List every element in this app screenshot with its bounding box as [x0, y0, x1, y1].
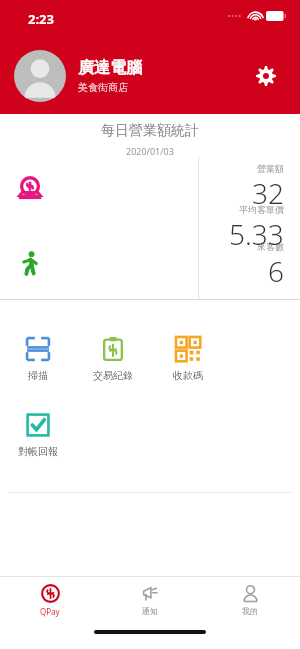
staticText: 收款碼 — [173, 369, 203, 382]
button[interactable]: 對帳回報 — [0, 412, 75, 458]
staticText: 2020/01/03 — [126, 145, 174, 157]
staticText: 營業額 — [257, 163, 284, 174]
staticText: 對帳回報 — [18, 445, 58, 458]
button[interactable]: Settings — [250, 60, 282, 92]
button[interactable]: 我的 — [200, 577, 300, 623]
staticText: 2:23 — [28, 10, 54, 28]
button[interactable]: QPay — [0, 577, 100, 623]
staticText: 來客數 — [257, 241, 284, 252]
staticText: 美食街商店 — [78, 81, 128, 94]
staticText: 掃描 — [28, 369, 48, 382]
staticText: 6 — [268, 252, 284, 290]
staticText: 交易紀錄 — [93, 369, 133, 382]
staticText: 通知 — [142, 606, 158, 616]
button[interactable]: 掃描 — [0, 336, 75, 382]
button[interactable]: 收款碼 — [150, 336, 225, 382]
button[interactable]: 通知 — [100, 577, 200, 623]
staticText: 廣達電腦 — [78, 58, 142, 78]
button[interactable]: 交易紀錄 — [75, 336, 150, 382]
staticText: 每日營業額統計 — [101, 122, 199, 140]
staticText: 我的 — [242, 606, 258, 616]
staticText: 5.33 — [229, 215, 284, 253]
staticText: 平均客單價 — [239, 204, 284, 215]
staticText: QPay — [40, 606, 60, 617]
staticText: 32 — [252, 174, 284, 212]
